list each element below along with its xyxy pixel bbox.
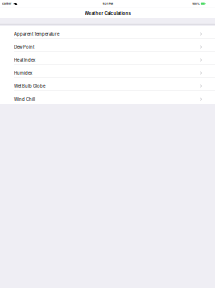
staticText: Wind Chill xyxy=(14,97,35,102)
staticText: Heat Index xyxy=(14,58,35,63)
staticText: 100% xyxy=(192,2,200,5)
staticText: 11:21 PM xyxy=(102,2,113,5)
staticText: Dew Point xyxy=(14,45,34,50)
staticText: Wet Bulb Globe xyxy=(14,84,45,89)
staticText: Carrier xyxy=(2,2,11,5)
staticText: Humidex xyxy=(14,71,32,76)
button[interactable]: Wet Bulb Globe xyxy=(0,78,215,91)
button[interactable]: Dew Point xyxy=(0,39,215,52)
staticText: Weather Calculations xyxy=(84,11,130,16)
button[interactable]: Apparent Temperature xyxy=(0,26,215,39)
button[interactable]: Wind Chill xyxy=(0,91,215,104)
staticText: Apparent Temperature xyxy=(14,32,59,37)
button[interactable]: Humidex xyxy=(0,65,215,78)
button[interactable]: Heat Index xyxy=(0,52,215,65)
